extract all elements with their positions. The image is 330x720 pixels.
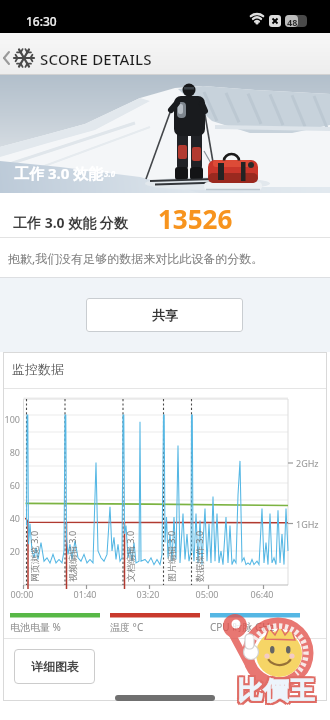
staticText: 16:30 bbox=[26, 13, 57, 29]
staticText: 详细图表 bbox=[31, 659, 79, 674]
button[interactable]: 共享 bbox=[86, 298, 243, 332]
staticText: 13526 bbox=[158, 201, 233, 236]
staticText: 3.0 bbox=[104, 168, 116, 179]
staticText: 1GHz bbox=[296, 518, 319, 530]
staticText: 抱歉,我们没有足够的数据来对比此设备的分数。 bbox=[8, 250, 264, 266]
staticText: 40 bbox=[0, 512, 20, 524]
staticText: 监控数据 bbox=[12, 361, 64, 377]
staticText: 2GHz bbox=[296, 457, 319, 469]
staticText: 电池电量 % bbox=[10, 620, 61, 634]
staticText: 工作 3.0 效能 bbox=[14, 163, 104, 183]
staticText: 05:00 bbox=[191, 588, 223, 600]
staticText: 01:40 bbox=[69, 588, 101, 600]
staticText: 20 bbox=[0, 545, 20, 557]
staticText: 比價王 bbox=[239, 673, 317, 704]
staticText: 视频编辑 3.0 bbox=[66, 530, 78, 582]
staticText: 比價王 bbox=[237, 677, 315, 708]
button[interactable]: 详细图表 bbox=[14, 649, 95, 684]
staticText: 比價王 bbox=[237, 673, 315, 704]
staticText: 比價王 bbox=[239, 677, 317, 708]
staticText: 比價王 bbox=[235, 675, 313, 706]
staticText: 48 bbox=[287, 16, 298, 28]
staticText: 100 bbox=[0, 413, 20, 425]
staticText: 80 bbox=[0, 446, 20, 458]
staticText: CPU 时脉 GHz bbox=[210, 620, 275, 634]
staticText: 温度 °C bbox=[110, 620, 144, 634]
staticText: 比價王 bbox=[237, 675, 315, 706]
staticText: 06:40 bbox=[246, 588, 278, 600]
staticText: 工作 3.0 效能 分数 bbox=[13, 213, 128, 232]
staticText: 数据操作 3.0 bbox=[193, 530, 205, 582]
staticText: 03:20 bbox=[132, 588, 164, 600]
staticText: 比價王 bbox=[235, 673, 313, 704]
staticText: SCORE DETAILS bbox=[40, 49, 152, 69]
staticText: 60 bbox=[0, 479, 20, 491]
staticText: 比價王 bbox=[235, 677, 313, 708]
staticText: 图片编辑 3.0 bbox=[165, 530, 177, 582]
button[interactable] bbox=[0, 33, 38, 75]
staticText: 共享 bbox=[152, 307, 178, 323]
staticText: 00:00 bbox=[6, 588, 38, 600]
staticText: 比價王 bbox=[239, 675, 317, 706]
staticText: 网页浏览 3.0 bbox=[28, 530, 40, 582]
staticText: 文档编辑 3.0 bbox=[124, 530, 136, 582]
